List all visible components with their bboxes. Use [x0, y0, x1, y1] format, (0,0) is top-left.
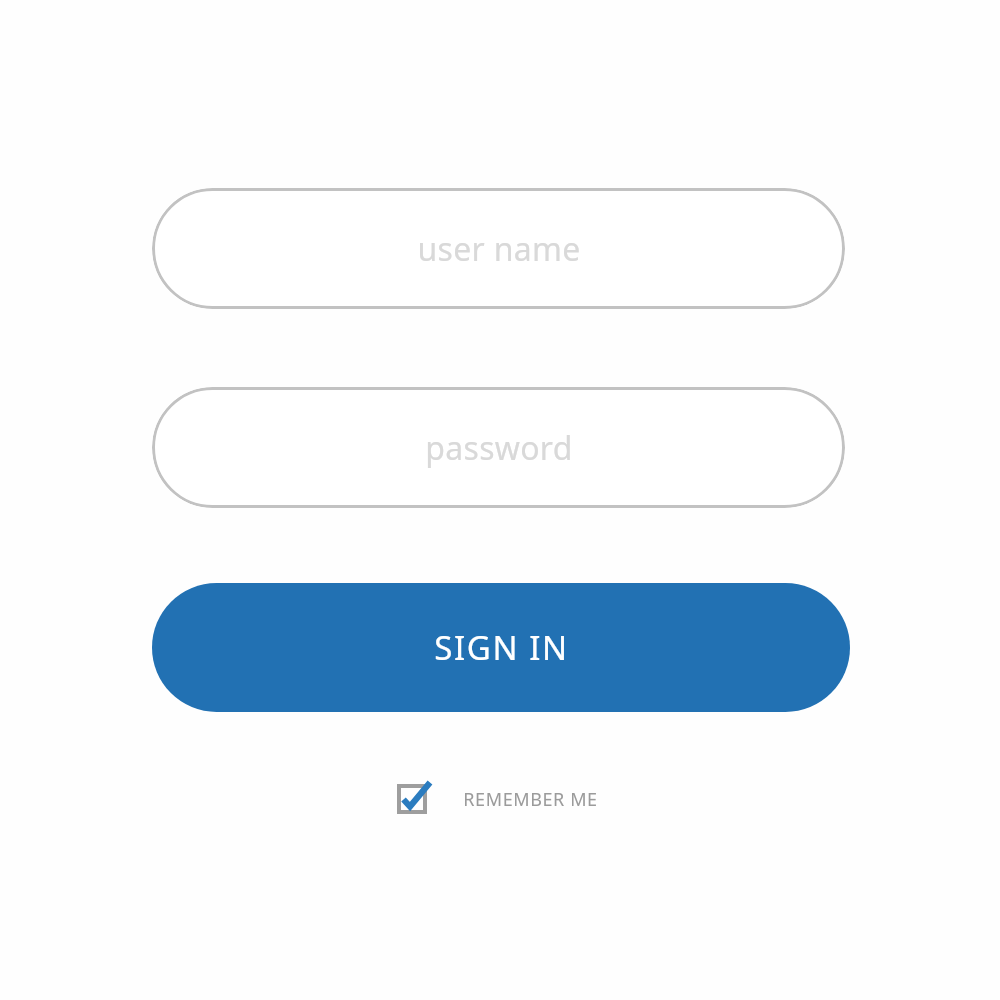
button[interactable]: Remember me checkbox, checked: [395, 778, 598, 820]
staticText: user name: [417, 227, 581, 271]
staticText: REMEMBER ME: [463, 787, 598, 812]
button[interactable]: user name: [152, 188, 845, 309]
button[interactable]: Remember me checkbox, checked: [395, 778, 437, 820]
button[interactable]: SIGN IN: [152, 583, 850, 712]
staticText: SIGN IN: [434, 625, 569, 670]
button[interactable]: password: [152, 387, 845, 508]
staticText: password: [425, 426, 573, 470]
